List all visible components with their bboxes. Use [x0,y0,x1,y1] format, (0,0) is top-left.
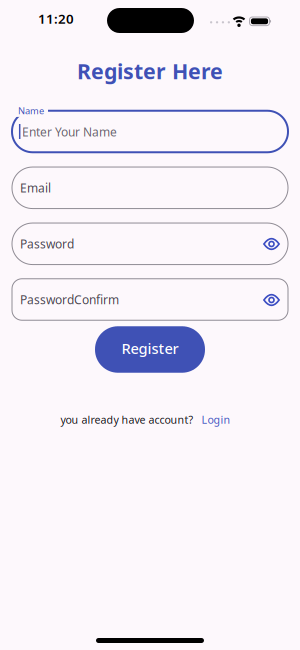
staticText: Password [20,236,74,252]
button[interactable]: Email [12,167,288,209]
button[interactable]: Show password [261,234,281,254]
button[interactable]: Name [12,111,288,152]
staticText: Name [18,104,44,117]
button[interactable]: Login [201,412,230,427]
staticText: Enter Your Name [22,124,117,140]
staticText: Login [201,412,230,427]
button[interactable]: Password confirm [12,279,288,320]
staticText: Email [20,180,51,196]
button[interactable]: Register [95,326,205,373]
staticText: Register Here [77,57,223,85]
button[interactable]: Password [12,223,288,265]
staticText: you already have account? [60,412,193,427]
button[interactable]: Show password confirmation [261,290,281,310]
staticText: PasswordConfirm [20,291,119,307]
staticText: 11:20 [38,10,74,27]
staticText: Register [121,338,178,358]
